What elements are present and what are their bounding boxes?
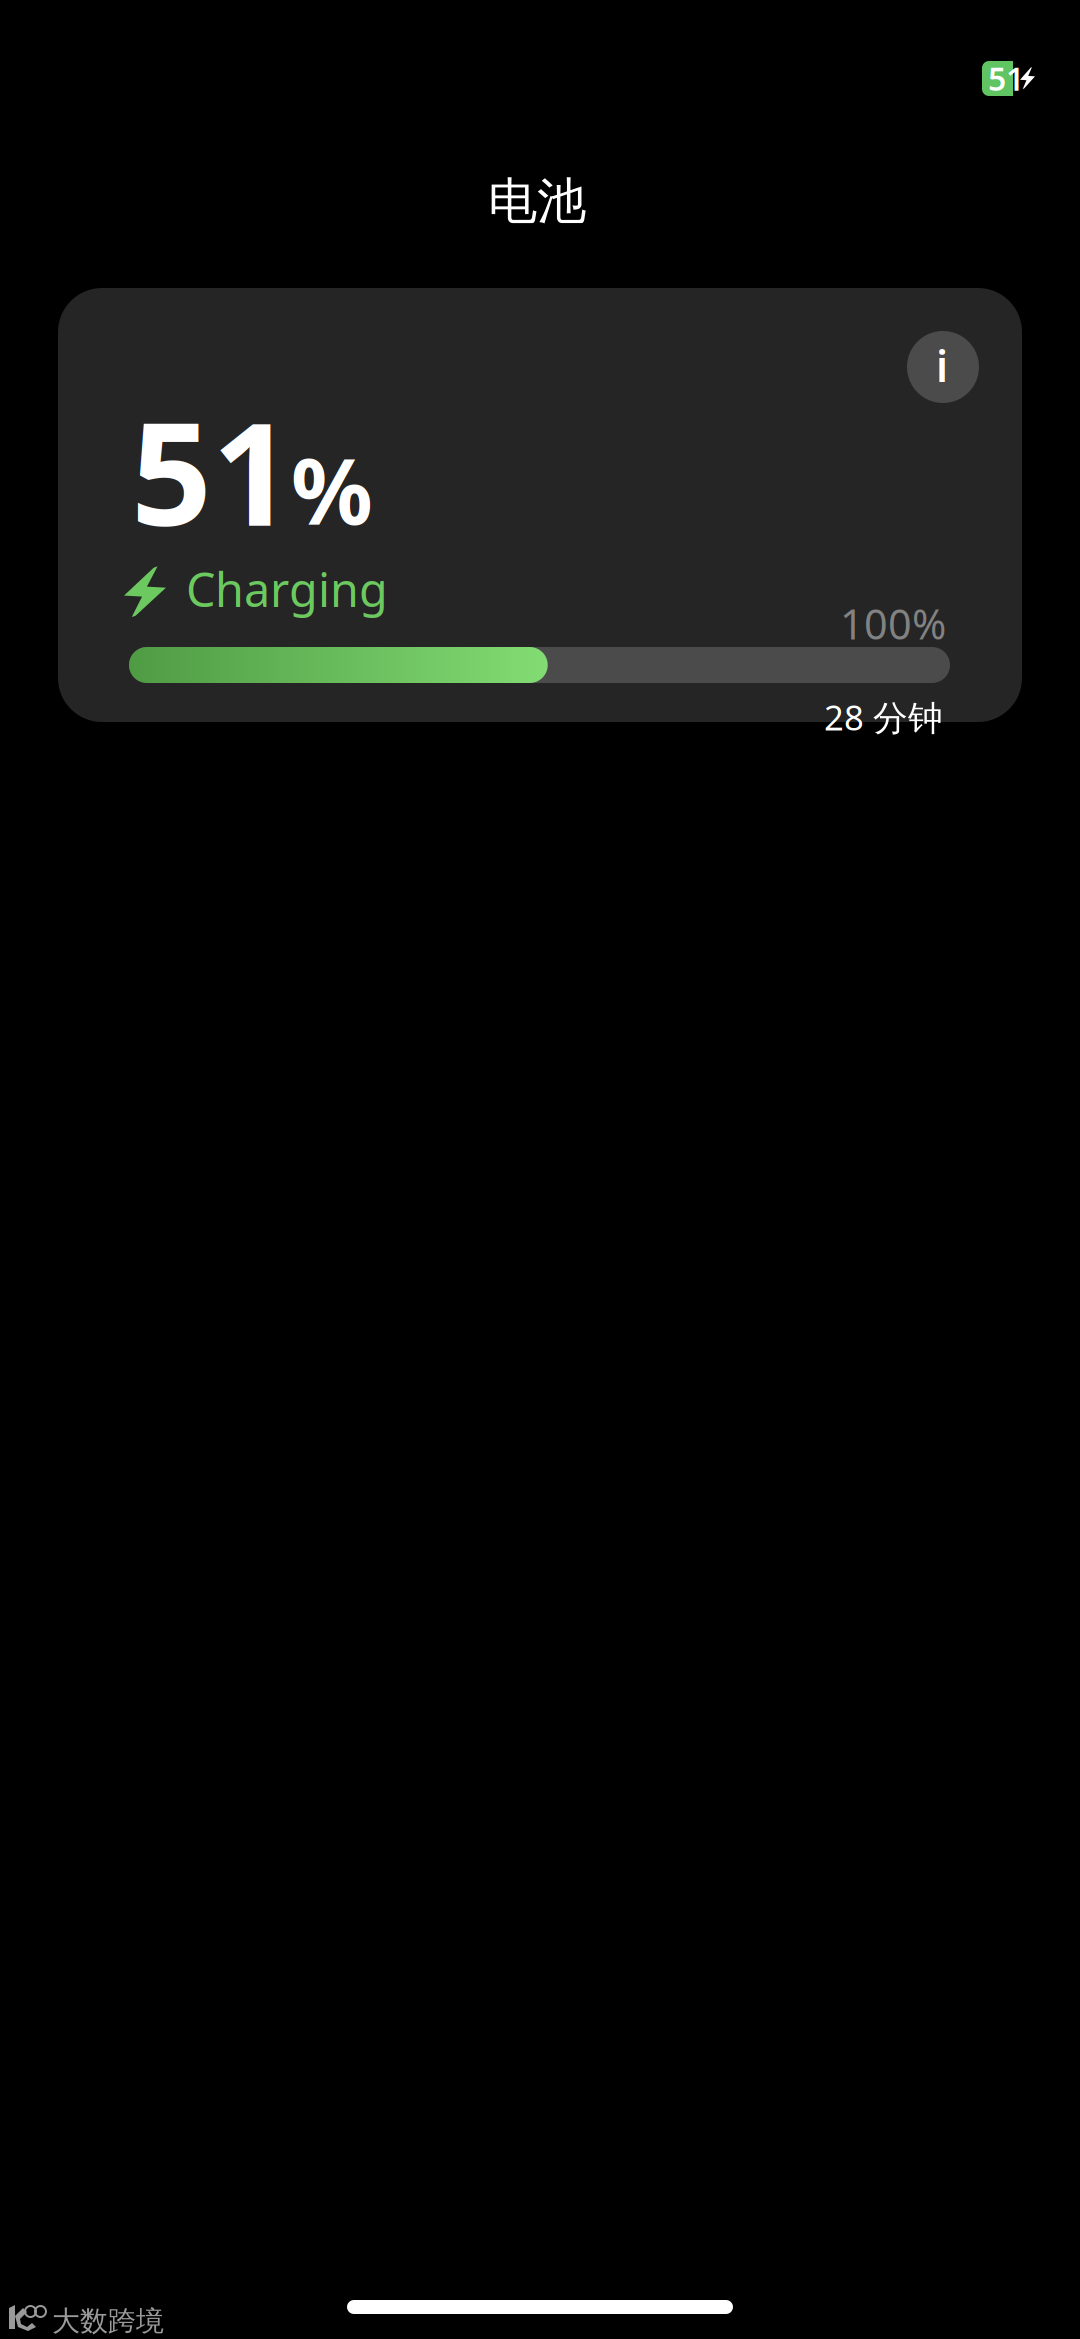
staticText: i	[936, 337, 948, 394]
staticText: 100%	[840, 596, 946, 651]
staticText: 51	[131, 377, 293, 565]
staticText: Charging	[186, 558, 388, 620]
staticText: 电池	[488, 171, 586, 232]
staticText: 51	[988, 57, 1024, 99]
staticText: %	[291, 429, 373, 549]
button[interactable]: Battery information	[907, 331, 979, 403]
staticText: 大数跨境	[52, 2304, 164, 2338]
staticText: 28 分钟	[824, 694, 943, 740]
